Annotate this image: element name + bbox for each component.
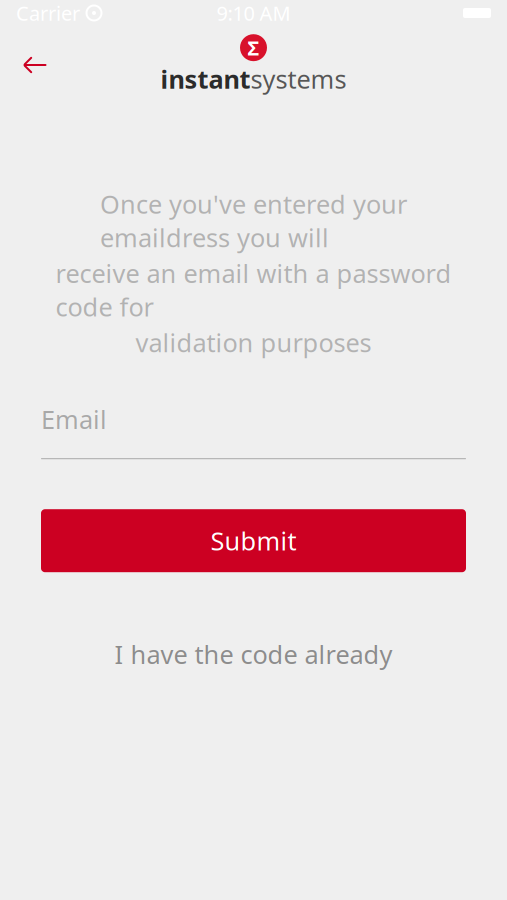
button[interactable]: Submit [41, 509, 466, 572]
staticText: 9:10 AM [216, 0, 290, 26]
staticText: I have the code already [114, 637, 392, 671]
staticText: validation purposes [135, 326, 371, 359]
button[interactable]: Back [13, 43, 57, 87]
staticText: systems [250, 62, 346, 96]
staticText: Once you've entered your emaildress you … [100, 187, 407, 254]
staticText: Submit [210, 524, 296, 557]
staticText: instant [160, 62, 250, 96]
staticText: Email [41, 402, 107, 436]
staticText: Ʃ [247, 34, 259, 61]
staticText: receive an email with a password code fo… [55, 256, 451, 324]
button[interactable]: I have the code already [41, 637, 466, 671]
staticText: Carrier [16, 0, 80, 26]
